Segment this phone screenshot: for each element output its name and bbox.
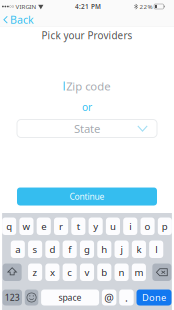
staticText: z [33,266,38,279]
button[interactable]: z [28,263,42,281]
button[interactable]: g [80,240,94,258]
button[interactable]: space [41,289,99,305]
staticText: s [33,243,38,256]
button[interactable]: @ [102,289,116,305]
staticText: c [67,266,72,279]
staticText: i [129,220,131,233]
button[interactable]: o [140,217,155,235]
button[interactable]: p [158,217,172,235]
button[interactable]: x [45,263,59,281]
button[interactable]: y [89,217,103,235]
button[interactable]: State [17,119,157,137]
button[interactable]: b [97,263,111,281]
staticText: l [155,243,157,256]
button[interactable]: k [132,240,146,258]
staticText: 22% [139,2,152,11]
button[interactable]: w [19,217,33,235]
button[interactable]: r [54,217,68,235]
button[interactable]: Back [0,13,39,26]
button[interactable]: n [115,263,129,281]
button[interactable]: Continue [17,187,157,205]
staticText: k [136,243,141,256]
staticText: o [145,220,151,233]
staticText: e [41,220,46,233]
staticText: Zip code [66,78,110,94]
staticText: t [77,220,80,233]
staticText: Back [10,12,34,27]
staticText: h [101,243,107,256]
staticText: y [93,220,98,233]
button[interactable]: l [149,240,163,258]
button[interactable]: . [119,289,134,305]
button[interactable]: f [63,240,77,258]
staticText: Continue [69,191,104,202]
staticText: v [84,266,89,279]
staticText: x [50,266,55,279]
button[interactable]: Emoji [25,289,38,305]
staticText: p [162,220,168,233]
button[interactable]: t [71,217,85,235]
button[interactable]: m [132,263,146,281]
button[interactable]: h [97,240,111,258]
staticText: Done [142,291,166,304]
button[interactable]: q [2,217,16,235]
button[interactable]: a [11,240,25,258]
staticText: . [125,290,128,305]
staticText: f [68,243,71,256]
staticText: space [59,292,82,303]
staticText: State [74,121,100,136]
button[interactable]: Done [136,289,171,305]
staticText: a [15,243,20,256]
staticText: w [22,220,30,233]
button[interactable]: c [63,263,77,281]
staticText: Pick your Providers [41,29,132,42]
button[interactable]: d [45,240,59,258]
button[interactable]: Shift [3,263,22,281]
button[interactable]: u [106,217,120,235]
staticText: 123 [5,292,20,303]
staticText: VIRGIN [15,2,36,11]
staticText: n [119,266,125,279]
staticText: b [101,266,107,279]
staticText: r [59,220,63,233]
button[interactable]: v [80,263,94,281]
staticText: m [134,266,143,279]
button[interactable]: i [123,217,137,235]
button[interactable]: j [115,240,129,258]
staticText: d [49,243,55,256]
staticText: @ [104,290,114,305]
staticText: q [6,220,12,233]
button[interactable]: s [28,240,42,258]
staticText: 4:21 PM [75,2,101,11]
staticText: or [82,100,92,114]
staticText: g [84,243,90,256]
button[interactable]: e [37,217,51,235]
button[interactable]: Delete [152,263,171,281]
staticText: u [110,220,116,233]
staticText: j [121,243,123,256]
button[interactable]: 123 [2,289,22,305]
